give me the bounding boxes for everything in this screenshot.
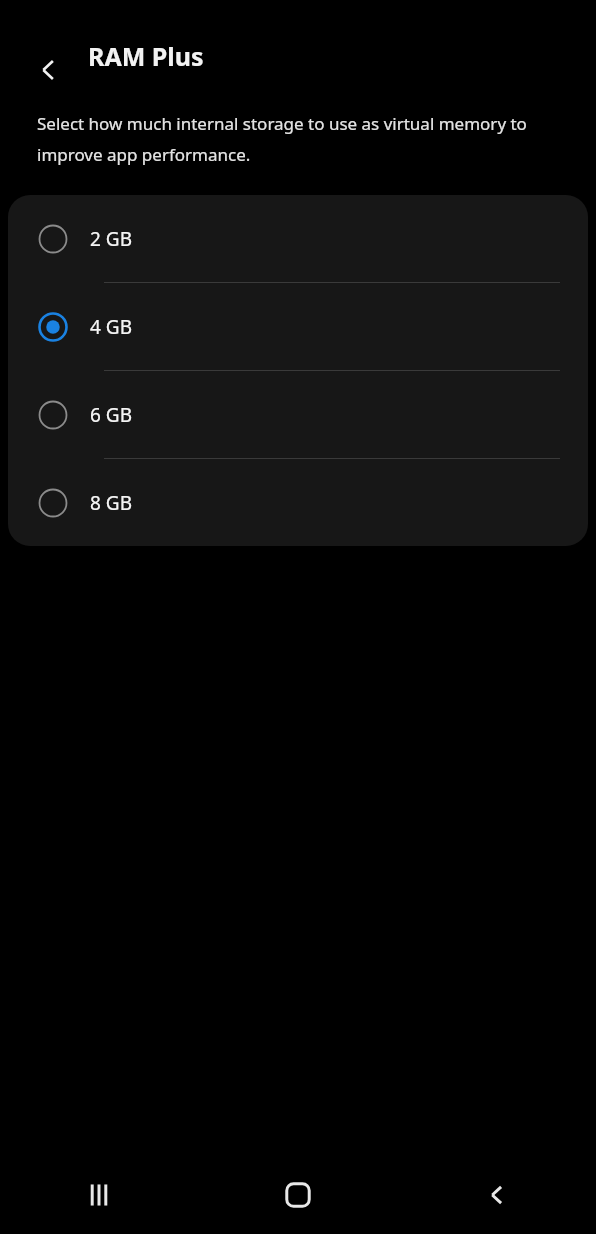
- staticText: RAM Plus: [88, 39, 204, 73]
- button[interactable]: 8 GB: [8, 459, 588, 546]
- staticText: Select how much internal storage to use …: [37, 112, 536, 166]
- button[interactable]: 6 GB: [8, 371, 588, 458]
- staticText: 2 GB: [90, 226, 132, 252]
- button[interactable]: Navigate up: [21, 42, 77, 98]
- button[interactable]: Recent apps: [0, 1156, 198, 1234]
- staticText: 4 GB: [90, 314, 132, 340]
- staticText: 8 GB: [90, 490, 132, 516]
- button[interactable]: 2 GB: [8, 195, 588, 282]
- staticText: 6 GB: [90, 402, 132, 428]
- button[interactable]: Back: [397, 1156, 596, 1234]
- button[interactable]: Home: [198, 1156, 397, 1234]
- button[interactable]: 4 GB: [8, 283, 588, 370]
